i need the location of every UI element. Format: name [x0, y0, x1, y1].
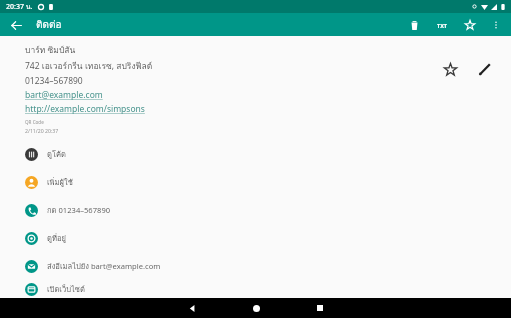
- staticText: 20:37 น.: [6, 1, 33, 12]
- button[interactable]: ดูโค้ด: [0, 140, 511, 168]
- staticText: QR Code: [25, 119, 44, 125]
- button[interactable]: Home: [243, 298, 269, 318]
- staticText: เพิ่มผู้ใช้: [47, 176, 73, 188]
- staticText: ติดต่อ: [36, 17, 62, 33]
- button[interactable]: ส่งอีเมลไปยัง bart@example.com: [0, 252, 511, 280]
- staticText: 2/11/20 20:37: [25, 127, 59, 134]
- staticText: 01234–567890: [25, 75, 83, 87]
- button[interactable]: Export as text: [432, 15, 452, 35]
- staticText: 742 เอเวอร์กรีน เทอเรซ, สปริงฟีลด์: [25, 59, 153, 73]
- button[interactable]: ดูที่อยู่: [0, 224, 511, 252]
- button[interactable]: Add to favourites: [460, 15, 480, 35]
- staticText: บาร์ท ซิมป์สัน: [25, 43, 76, 57]
- button[interactable]: Back: [179, 298, 205, 318]
- staticText: ส่งอีเมลไปยัง bart@example.com: [47, 260, 161, 272]
- button[interactable]: เปิดเว็บไซต์: [0, 280, 511, 298]
- button[interactable]: Edit: [471, 56, 497, 82]
- staticText: เปิดเว็บไซต์: [47, 283, 85, 295]
- button[interactable]: Delete: [404, 15, 424, 35]
- staticText: ดูโค้ด: [47, 148, 67, 160]
- staticText: TXT: [437, 22, 448, 29]
- staticText: ดูที่อยู่: [47, 232, 66, 244]
- button[interactable]: Recent apps: [307, 298, 333, 318]
- staticText: กด 01234–567890: [47, 204, 111, 216]
- button[interactable]: bart@example.com: [25, 89, 103, 101]
- button[interactable]: http://example.com/simpsons: [25, 103, 145, 115]
- button[interactable]: กด 01234–567890: [0, 196, 511, 224]
- button[interactable]: More options: [486, 15, 506, 35]
- button[interactable]: Back: [6, 15, 26, 35]
- button[interactable]: เพิ่มผู้ใช้: [0, 168, 511, 196]
- button[interactable]: Favourite: [437, 56, 463, 82]
